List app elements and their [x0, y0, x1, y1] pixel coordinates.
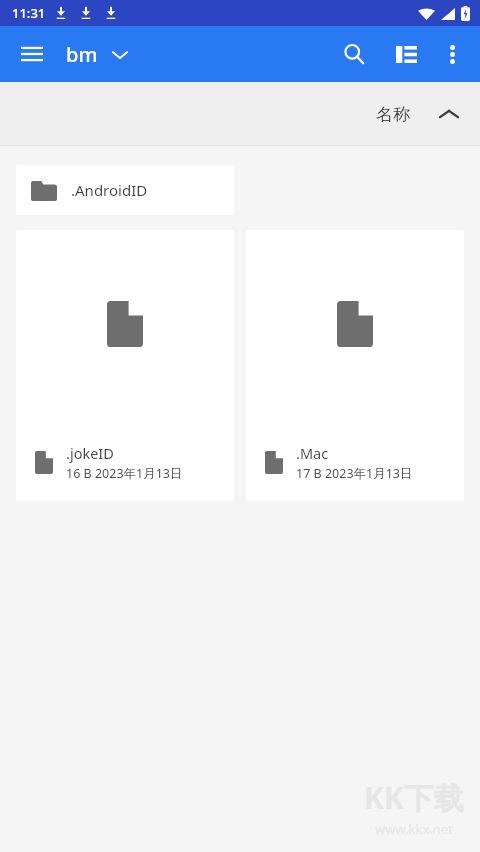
button[interactable]: 名称 — [376, 97, 466, 131]
button[interactable]: .Mac — [246, 230, 464, 501]
button[interactable]: Open navigation menu — [12, 34, 52, 74]
staticText: 名称 — [376, 104, 410, 125]
button[interactable]: Search — [332, 32, 376, 76]
button[interactable]: More options — [430, 32, 474, 76]
staticText: .AndroidID — [71, 180, 148, 200]
button[interactable]: bm — [66, 41, 128, 68]
staticText: bm — [66, 41, 98, 68]
button[interactable]: .jokeID — [16, 230, 234, 501]
staticText: 11:31 — [12, 4, 46, 22]
staticText: 16 B 2023年1月13日 — [66, 465, 183, 482]
button[interactable]: Switch to list view — [384, 32, 428, 76]
staticText: www.kkx.net — [375, 820, 453, 838]
staticText: KK下载 — [364, 777, 464, 818]
button[interactable]: .AndroidID — [16, 165, 234, 215]
staticText: 17 B 2023年1月13日 — [296, 465, 413, 482]
staticText: .jokeID — [66, 443, 114, 463]
staticText: .Mac — [296, 443, 329, 463]
